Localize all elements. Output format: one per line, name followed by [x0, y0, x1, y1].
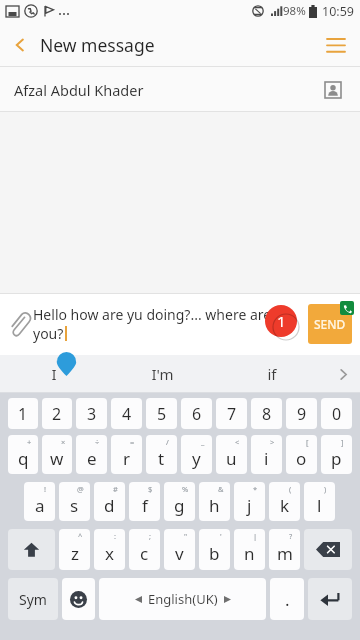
button[interactable]: %	[164, 482, 195, 521]
button[interactable]: 2	[42, 398, 72, 429]
staticText: d	[104, 494, 115, 517]
button[interactable]: 5	[146, 398, 177, 429]
staticText: z	[71, 542, 79, 565]
button[interactable]: (	[269, 482, 300, 521]
button[interactable]: Attach	[2, 307, 36, 341]
button[interactable]: Shift	[8, 529, 55, 570]
staticText: ?	[289, 531, 293, 541]
staticText: 9	[297, 403, 307, 425]
staticText: (	[289, 484, 292, 494]
button[interactable]: 9	[286, 398, 317, 429]
staticText: )	[324, 484, 327, 494]
button[interactable]: [	[286, 435, 317, 474]
button[interactable]: I	[0, 355, 108, 393]
staticText: ]	[341, 437, 344, 447]
button[interactable]: @	[59, 482, 90, 521]
staticText: 7	[227, 403, 237, 425]
button[interactable]: English(UK)	[99, 578, 266, 620]
staticText: p	[331, 447, 342, 470]
button[interactable]: _	[181, 435, 212, 474]
staticText: if	[267, 364, 277, 384]
button[interactable]: Emoji	[62, 578, 95, 620]
staticText: >	[270, 437, 275, 447]
staticText: *	[253, 484, 258, 494]
staticText: "	[184, 531, 188, 541]
staticText: r	[123, 447, 131, 470]
staticText: you?	[33, 324, 64, 343]
staticText: :	[114, 531, 117, 541]
staticText: /	[166, 437, 169, 447]
staticText: @	[77, 484, 84, 494]
button[interactable]: Sym	[8, 578, 58, 620]
staticText: h	[209, 494, 220, 517]
button[interactable]: '	[199, 529, 230, 570]
staticText: j	[247, 494, 252, 517]
button[interactable]: 3	[76, 398, 107, 429]
staticText: c	[140, 542, 149, 565]
staticText: ^	[78, 531, 83, 541]
button[interactable]: Menu	[312, 22, 360, 67]
staticText: n	[244, 542, 255, 565]
staticText: y	[192, 447, 201, 470]
button[interactable]: More suggestions	[326, 355, 360, 393]
button[interactable]: ×	[42, 435, 72, 474]
button[interactable]: 8	[251, 398, 282, 429]
staticText: s	[70, 494, 79, 517]
button[interactable]: Back	[0, 25, 40, 65]
button[interactable]: 0	[321, 398, 352, 429]
button[interactable]: :	[94, 529, 125, 570]
staticText: k	[280, 494, 290, 517]
button[interactable]: ?	[269, 529, 300, 570]
button[interactable]: <	[216, 435, 247, 474]
staticText: ÷	[95, 437, 100, 447]
button[interactable]: SEND	[308, 304, 352, 344]
button[interactable]: *	[234, 482, 265, 521]
staticText: f	[142, 494, 148, 517]
staticText: 3	[87, 403, 97, 425]
staticText: 4	[122, 403, 132, 425]
button[interactable]: +	[8, 435, 38, 474]
staticText: t	[158, 447, 165, 470]
button[interactable]: Backspace	[304, 529, 352, 570]
staticText: #	[113, 484, 118, 494]
staticText: l	[317, 494, 322, 517]
button[interactable]: ÷	[76, 435, 107, 474]
staticText: 2	[52, 403, 62, 425]
staticText: 1	[277, 311, 286, 331]
staticText: w	[50, 447, 64, 470]
staticText: ;	[149, 531, 152, 541]
button[interactable]: 1	[8, 398, 38, 429]
button[interactable]: Add contact	[316, 73, 350, 107]
button[interactable]: )	[304, 482, 335, 521]
button[interactable]: $	[129, 482, 160, 521]
button[interactable]: !	[24, 482, 55, 521]
button[interactable]: #	[94, 482, 125, 521]
button[interactable]: |	[234, 529, 265, 570]
staticText: u	[226, 447, 237, 470]
staticText: English(UK)	[148, 590, 218, 608]
button[interactable]: "	[164, 529, 195, 570]
button[interactable]: .	[270, 578, 304, 620]
button[interactable]: if	[217, 355, 326, 393]
button[interactable]: =	[111, 435, 142, 474]
button[interactable]: 7	[216, 398, 247, 429]
button[interactable]: ;	[129, 529, 160, 570]
button[interactable]: 6	[181, 398, 212, 429]
staticText: |	[253, 531, 258, 541]
button[interactable]: &	[199, 482, 230, 521]
staticText: i	[264, 447, 269, 470]
button[interactable]: >	[251, 435, 282, 474]
staticText: v	[175, 542, 184, 565]
staticText: $	[148, 484, 153, 494]
button[interactable]: 4	[111, 398, 142, 429]
button[interactable]: /	[146, 435, 177, 474]
staticText: 0	[332, 403, 342, 425]
button[interactable]: ^	[59, 529, 90, 570]
staticText: <	[235, 437, 240, 447]
button[interactable]: Enter	[308, 578, 352, 620]
staticText: 6	[192, 403, 202, 425]
button[interactable]: I'm	[108, 355, 217, 393]
button[interactable]: ]	[321, 435, 352, 474]
staticText: SEND	[314, 316, 346, 332]
staticText: Hello how are yu doing?... where are	[33, 305, 272, 324]
